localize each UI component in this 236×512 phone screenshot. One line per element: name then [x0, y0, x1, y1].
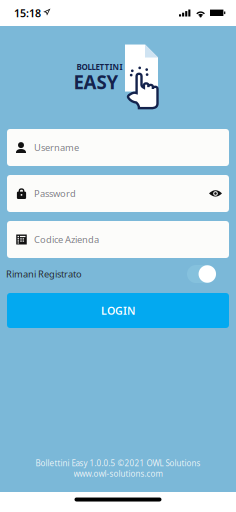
staticText: Bollettini Easy 1.0.0.5 ©2021 OWL Soluti… — [35, 458, 200, 468]
staticText: EASY — [73, 70, 118, 94]
staticText: 15:18 — [14, 6, 41, 20]
staticText: BOLLETTINI — [76, 61, 122, 72]
staticText: www.owl-solutions.com — [73, 468, 162, 479]
staticText: Username — [34, 141, 79, 154]
staticText: LOGIN — [101, 303, 135, 318]
button[interactable]: Username — [7, 129, 229, 166]
button[interactable]: Rimani Registrato — [0, 261, 236, 287]
staticText: Password — [34, 187, 76, 200]
button[interactable]: Codice Azienda — [7, 221, 229, 258]
staticText: Codice Azienda — [34, 233, 99, 246]
button[interactable]: LOGIN — [0, 293, 236, 328]
button[interactable]: Password — [7, 175, 229, 212]
staticText: Rimani Registrato — [6, 268, 82, 280]
